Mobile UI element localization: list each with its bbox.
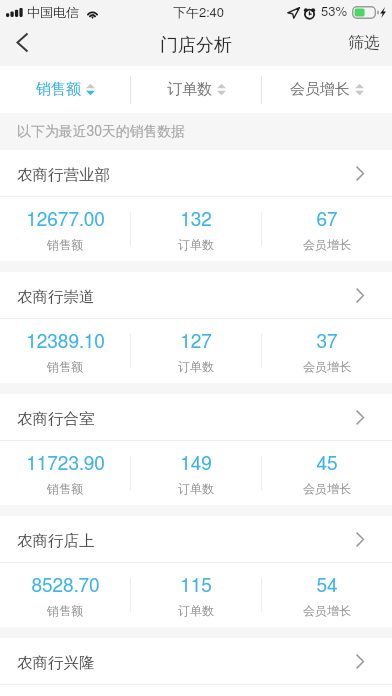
staticText: 37	[316, 333, 338, 352]
staticText: 会员增长	[303, 359, 351, 374]
staticText: 115	[180, 577, 212, 596]
staticText: 会员增长	[290, 80, 350, 99]
staticText: 8528.70	[31, 577, 100, 596]
button[interactable]: 筛选	[348, 24, 380, 66]
staticText: 54	[316, 577, 338, 596]
staticText: 农商行兴隆	[17, 653, 95, 673]
button[interactable]: 订单数	[131, 66, 261, 113]
staticText: 会员增长	[303, 481, 351, 496]
staticText: 销售额	[36, 80, 81, 99]
staticText: 订单数	[178, 481, 214, 496]
staticText: 销售额	[47, 359, 83, 374]
staticText: 会员增长	[303, 237, 351, 252]
button[interactable]: 会员增长	[262, 66, 392, 113]
button[interactable]: 农商行兴隆	[0, 638, 392, 684]
staticText: 53%	[321, 6, 348, 19]
button[interactable]: 销售额	[0, 66, 130, 113]
staticText: 会员增长	[303, 603, 351, 618]
staticText: 农商行崇道	[17, 287, 95, 307]
staticText: 农商行店上	[17, 531, 95, 551]
staticText: 订单数	[167, 80, 212, 99]
staticText: 127	[180, 333, 212, 352]
staticText: 132	[180, 211, 212, 230]
staticText: 12389.10	[26, 333, 105, 352]
staticText: 149	[180, 455, 212, 474]
button[interactable]: 农商行崇道	[0, 272, 392, 318]
button[interactable]: 农商行合室	[0, 394, 392, 440]
staticText: 筛选	[348, 33, 380, 53]
staticText: 门店分析	[160, 34, 232, 57]
staticText: 以下为最近30天的销售数据	[17, 123, 186, 141]
staticText: 67	[316, 211, 338, 230]
staticText: 中国电信	[27, 4, 79, 20]
staticText: 销售额	[47, 481, 83, 496]
staticText: 下午2:40	[173, 4, 224, 20]
staticText: 11723.90	[26, 455, 105, 474]
staticText: 订单数	[178, 237, 214, 252]
staticText: 销售额	[47, 603, 83, 618]
staticText: 订单数	[178, 359, 214, 374]
button[interactable]: 农商行营业部	[0, 150, 392, 196]
staticText: 12677.00	[26, 211, 105, 230]
staticText: 农商行合室	[17, 409, 95, 429]
staticText: 销售额	[47, 237, 83, 252]
staticText: 订单数	[178, 603, 214, 618]
staticText: 农商行营业部	[17, 165, 110, 185]
button[interactable]: 返回	[0, 21, 44, 63]
staticText: 45	[316, 455, 338, 474]
button[interactable]: 农商行店上	[0, 516, 392, 562]
